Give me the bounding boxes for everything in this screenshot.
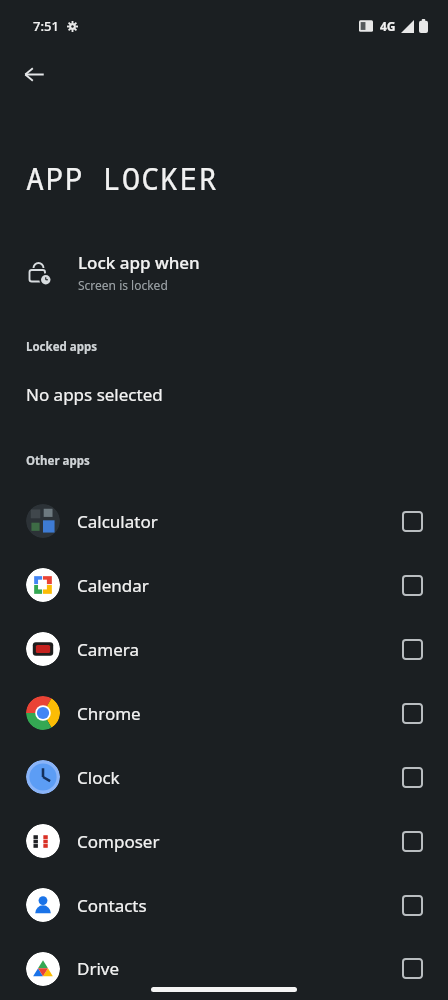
- button[interactable]: Calculator: [0, 489, 448, 553]
- staticText: Lock app when: [78, 251, 200, 274]
- staticText: Screen is locked: [78, 277, 168, 293]
- staticText: Other apps: [26, 453, 90, 469]
- button[interactable]: Lock app when: [0, 243, 448, 301]
- staticText: Camera: [77, 638, 139, 661]
- button[interactable]: Back: [12, 52, 56, 96]
- staticText: Chrome: [77, 702, 141, 725]
- button[interactable]: Contacts: [0, 873, 448, 937]
- button[interactable]: Clock: [0, 745, 448, 809]
- button[interactable]: Drive: [0, 937, 448, 1000]
- staticText: Contacts: [77, 894, 147, 917]
- button[interactable]: Calendar: [0, 553, 448, 617]
- button[interactable]: Camera: [0, 617, 448, 681]
- button[interactable]: Chrome: [0, 681, 448, 745]
- staticText: Calculator: [77, 510, 158, 533]
- button[interactable]: Composer: [0, 809, 448, 873]
- staticText: Locked apps: [26, 339, 98, 355]
- staticText: 4G: [380, 18, 396, 34]
- staticText: 7:51: [33, 17, 59, 35]
- staticText: Composer: [77, 830, 160, 853]
- staticText: Clock: [77, 766, 120, 789]
- staticText: Calendar: [77, 574, 149, 597]
- staticText: No apps selected: [26, 383, 163, 406]
- staticText: APP LOCKER: [26, 158, 218, 199]
- staticText: Drive: [77, 957, 120, 980]
